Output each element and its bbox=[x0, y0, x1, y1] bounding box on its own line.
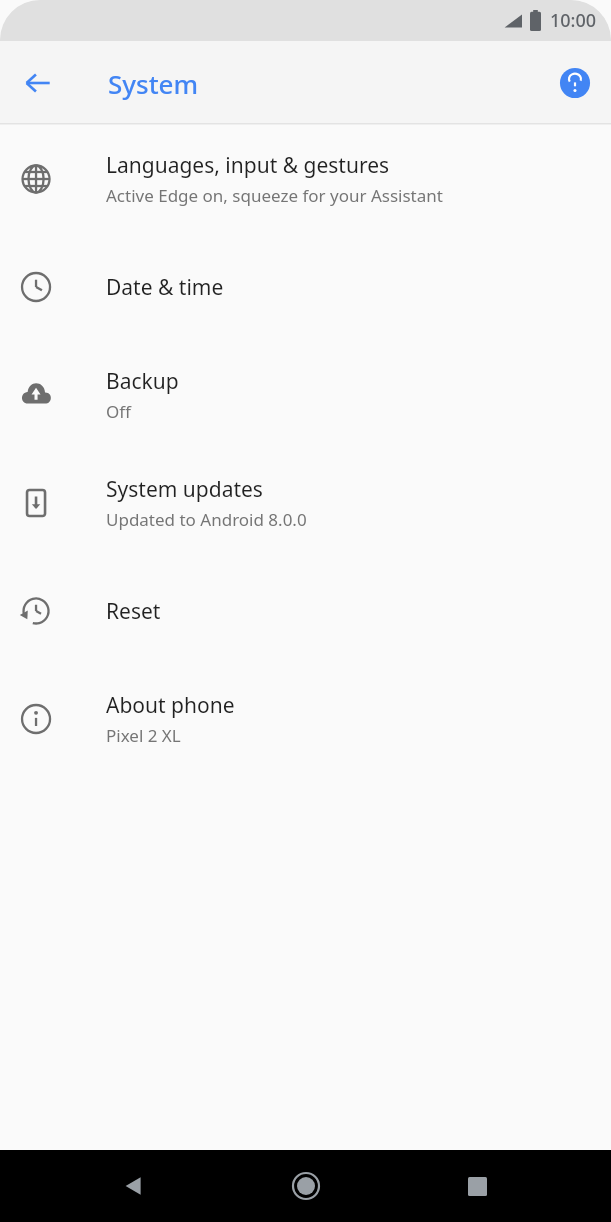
button[interactable]: Date & time bbox=[0, 233, 611, 341]
staticText: Reset bbox=[106, 597, 161, 626]
staticText: Backup bbox=[106, 367, 179, 396]
button[interactable]: Help bbox=[553, 61, 597, 105]
staticText: System updates bbox=[106, 475, 263, 504]
staticText: 10:00 bbox=[550, 8, 597, 33]
button[interactable]: Home bbox=[282, 1162, 330, 1210]
staticText: Languages, input & gestures bbox=[106, 151, 390, 180]
button[interactable]: About phone bbox=[0, 665, 611, 773]
staticText: Pixel 2 XL bbox=[106, 724, 181, 747]
staticText: Updated to Android 8.0.0 bbox=[106, 508, 307, 531]
button[interactable]: Back bbox=[16, 61, 60, 105]
staticText: About phone bbox=[106, 691, 235, 720]
staticText: System bbox=[108, 66, 199, 101]
button[interactable]: Backup bbox=[0, 341, 611, 449]
button[interactable]: Reset bbox=[0, 557, 611, 665]
button[interactable]: Back bbox=[110, 1162, 158, 1210]
staticText: Off bbox=[106, 400, 131, 423]
staticText: Active Edge on, squeeze for your Assista… bbox=[106, 184, 443, 207]
button[interactable]: Languages, input & gestures bbox=[0, 125, 611, 233]
button[interactable]: System updates bbox=[0, 449, 611, 557]
staticText: Date & time bbox=[106, 273, 224, 302]
button[interactable]: Recent apps bbox=[453, 1162, 501, 1210]
